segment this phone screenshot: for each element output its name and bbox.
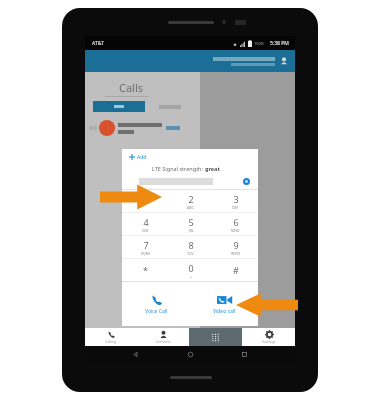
button[interactable]: Calling bbox=[85, 328, 137, 346]
staticText: 3 bbox=[233, 193, 239, 205]
button[interactable]: 3 bbox=[213, 190, 258, 212]
staticText: great bbox=[205, 165, 220, 172]
other: Account bbox=[279, 56, 289, 66]
staticText: Calls bbox=[119, 80, 144, 95]
button[interactable]: Add bbox=[129, 149, 258, 165]
button[interactable]: 8 bbox=[168, 236, 213, 258]
button[interactable]: 5 bbox=[168, 213, 213, 235]
button[interactable]: 2 bbox=[168, 190, 213, 212]
staticText: ABC bbox=[187, 205, 194, 210]
button[interactable]: 9 bbox=[213, 236, 258, 258]
staticText: 2 bbox=[188, 193, 194, 205]
button[interactable]: Contacts bbox=[137, 328, 189, 346]
staticText: 9 bbox=[233, 239, 239, 251]
staticText: Calling bbox=[105, 339, 117, 344]
staticText: MNO bbox=[231, 228, 240, 233]
staticText: 5:38 PM bbox=[270, 40, 289, 47]
button[interactable]: Back bbox=[132, 351, 139, 358]
staticText: LTE Signal strength: bbox=[152, 165, 205, 172]
staticText: 100% bbox=[254, 41, 265, 46]
staticText: Add bbox=[137, 154, 147, 161]
staticText: TUV bbox=[187, 251, 194, 256]
staticText: GHI bbox=[142, 228, 149, 233]
button[interactable]: Video call bbox=[190, 282, 258, 326]
button[interactable]: 1 bbox=[122, 190, 168, 212]
staticText: 7 bbox=[143, 239, 149, 251]
staticText: Settings bbox=[262, 339, 276, 344]
button[interactable]: 4 bbox=[122, 213, 168, 235]
button[interactable]: # bbox=[213, 259, 258, 281]
staticText: Contacts bbox=[156, 339, 171, 344]
staticText: 5 bbox=[188, 216, 194, 228]
button[interactable]: * bbox=[122, 259, 168, 281]
staticText: JKL bbox=[189, 228, 194, 233]
staticText: AT&T bbox=[92, 40, 104, 47]
staticText: PQRS bbox=[141, 251, 150, 256]
staticText: WXYZ bbox=[231, 251, 241, 256]
button[interactable]: Settings bbox=[242, 328, 295, 346]
button[interactable]: 7 bbox=[122, 236, 168, 258]
staticText: # bbox=[233, 264, 239, 276]
staticText: 8 bbox=[188, 239, 194, 251]
staticText: * bbox=[143, 264, 148, 276]
staticText: 6 bbox=[233, 216, 239, 228]
staticText: 0 bbox=[188, 262, 194, 274]
staticText: 4 bbox=[143, 216, 149, 228]
button[interactable]: 0 bbox=[168, 259, 213, 281]
button[interactable]: Info bbox=[243, 178, 250, 185]
button[interactable]: Recents bbox=[241, 351, 248, 358]
button[interactable]: 6 bbox=[213, 213, 258, 235]
staticText: Voice Call bbox=[145, 308, 168, 315]
button[interactable]: Voice Call bbox=[122, 282, 190, 326]
staticText: + bbox=[190, 274, 193, 279]
button[interactable]: Home bbox=[187, 351, 194, 358]
button[interactable]: Keypad bbox=[189, 328, 242, 346]
staticText: Video call bbox=[213, 308, 236, 315]
staticText: DEF bbox=[232, 205, 239, 210]
staticText: 1 bbox=[142, 195, 148, 207]
